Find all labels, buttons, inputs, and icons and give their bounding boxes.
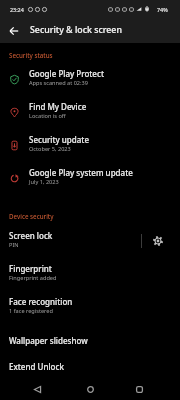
- staticText: Security status: [9, 51, 53, 59]
- button[interactable]: Find My Device: [0, 95, 180, 128]
- staticText: Device security: [9, 212, 54, 220]
- button[interactable]: Security update: [0, 128, 180, 161]
- button[interactable]: Recent apps: [127, 377, 151, 400]
- button[interactable]: Fingerprint: [0, 257, 180, 290]
- button[interactable]: Google Play system update: [0, 161, 180, 194]
- button[interactable]: Extend Unlock: [0, 353, 180, 379]
- staticText: Google Play Protect: [29, 68, 104, 79]
- staticText: Extend Unlock: [9, 361, 64, 372]
- button[interactable]: Home: [78, 377, 102, 400]
- staticText: Wallpaper slideshow: [9, 335, 88, 346]
- staticText: July 1, 2023: [29, 178, 59, 186]
- staticText: Find My Device: [29, 101, 87, 112]
- staticText: Fingerprint: [9, 263, 52, 274]
- button[interactable]: Screen lock settings: [146, 229, 170, 253]
- staticText: October 5, 2023: [29, 145, 71, 153]
- button[interactable]: Face recognition: [0, 290, 180, 323]
- staticText: Location is off: [29, 112, 66, 120]
- staticText: 1 face registered: [9, 307, 53, 315]
- staticText: Face recognition: [9, 296, 73, 307]
- staticText: Security update: [29, 134, 90, 145]
- button[interactable]: Google Play Protect: [0, 62, 180, 95]
- staticText: 23:24: [10, 6, 24, 13]
- staticText: Google Play system update: [29, 167, 133, 178]
- button[interactable]: Navigate up: [1, 18, 26, 43]
- staticText: Apps scanned at 02:39: [29, 79, 88, 87]
- staticText: Fingerprint added: [9, 274, 57, 282]
- staticText: 74%: [157, 6, 168, 13]
- staticText: Security & lock screen: [30, 24, 122, 36]
- button[interactable]: Wallpaper slideshow: [0, 327, 180, 353]
- button[interactable]: Screen lock: [0, 224, 180, 257]
- staticText: Screen lock: [9, 230, 53, 241]
- staticText: PIN: [9, 241, 19, 249]
- button[interactable]: Back: [25, 377, 49, 400]
